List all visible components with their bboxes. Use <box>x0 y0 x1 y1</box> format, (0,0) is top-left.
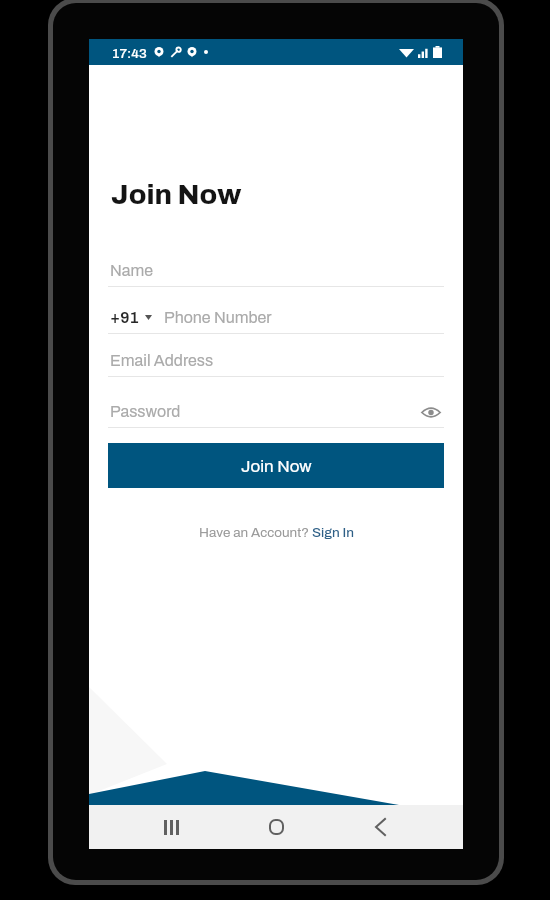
button[interactable]: Show password <box>418 399 444 425</box>
button[interactable]: Home <box>252 805 300 849</box>
staticText: Name <box>110 262 154 279</box>
staticText: +91 <box>110 309 139 326</box>
staticText: Have an Account? <box>199 525 312 540</box>
staticText: Email Address <box>110 352 214 369</box>
staticText: Phone Number <box>164 309 272 326</box>
button[interactable]: Back <box>356 805 404 849</box>
staticText: Sign In <box>312 525 354 540</box>
staticText: Join Now <box>241 457 312 475</box>
staticText: Password <box>110 403 181 420</box>
button[interactable]: Name <box>108 254 444 287</box>
button[interactable]: Email Address <box>108 344 444 377</box>
staticText: Join Now <box>111 179 242 209</box>
button[interactable]: +91 <box>108 301 444 334</box>
button[interactable]: Recent apps <box>147 805 195 849</box>
button[interactable]: Password <box>108 395 444 428</box>
staticText: 17:43 <box>112 46 147 61</box>
button[interactable]: Sign In <box>312 525 354 540</box>
button[interactable]: Join Now <box>108 443 444 488</box>
